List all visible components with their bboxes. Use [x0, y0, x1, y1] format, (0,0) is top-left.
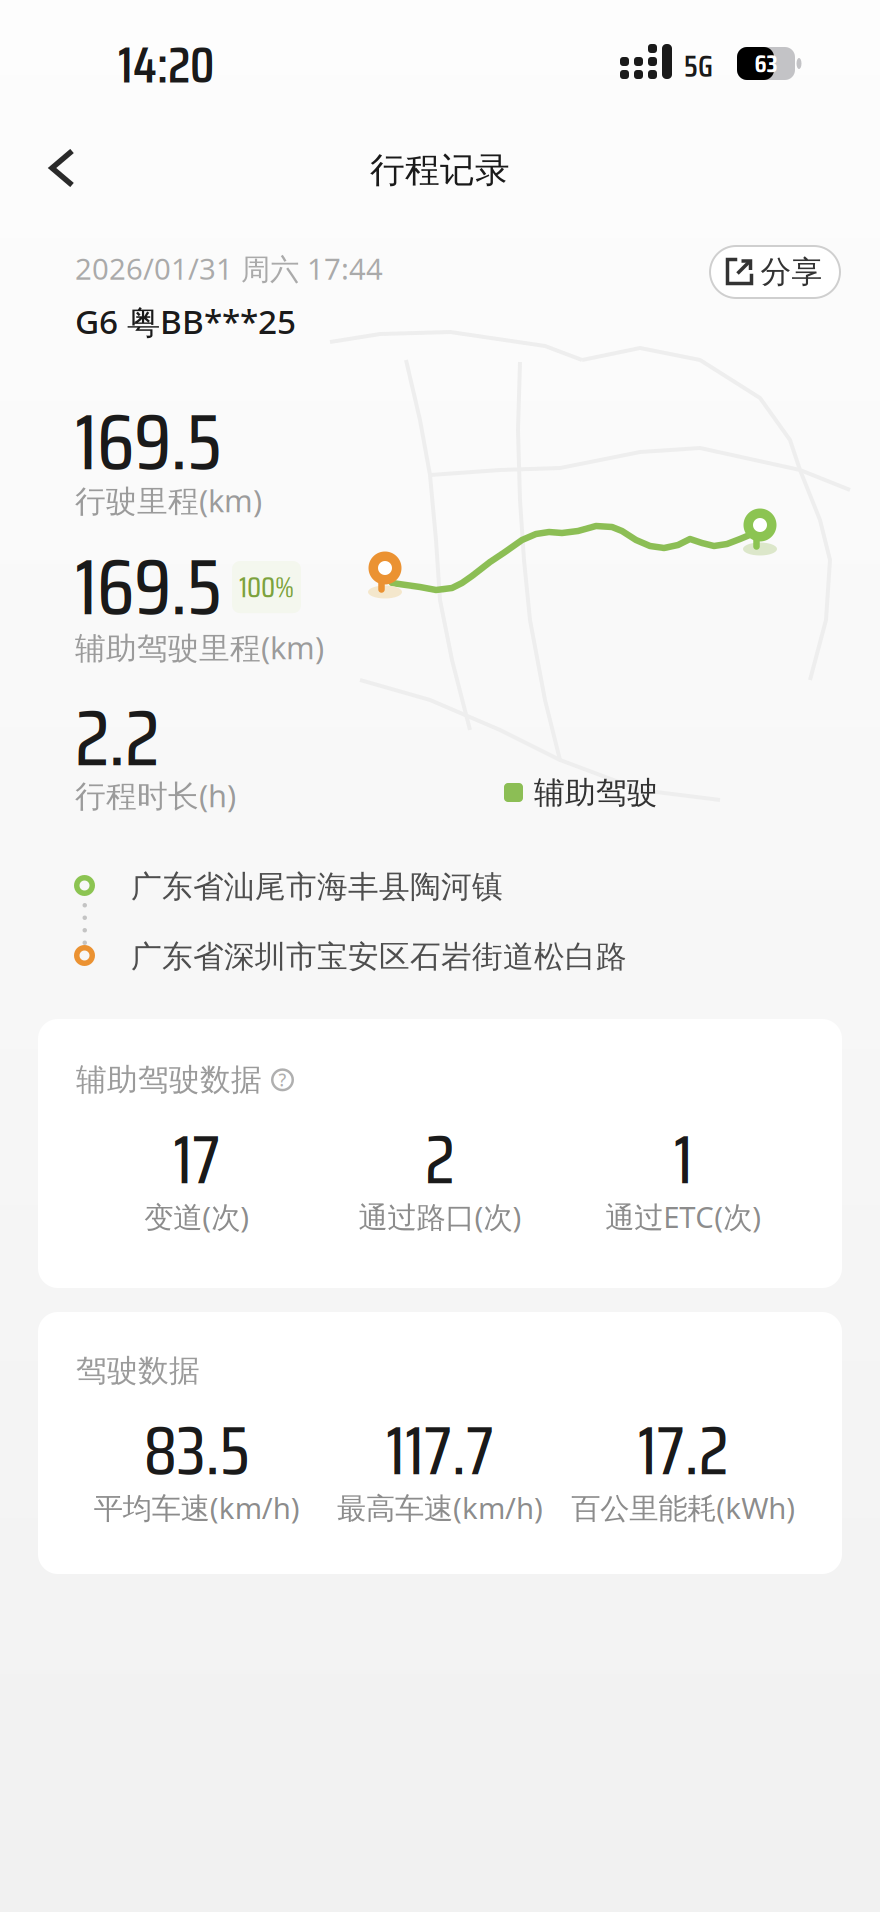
staticText: 2	[425, 1106, 455, 1213]
button[interactable]: 分享	[709, 245, 841, 299]
staticText: 最高车速(km/h)	[337, 1488, 543, 1527]
staticText: 辅助驾驶数据	[76, 1061, 262, 1099]
staticText: 行程时长(h)	[75, 775, 236, 816]
staticText: 分享	[760, 253, 822, 291]
staticText: G6 粤BB***25	[75, 299, 296, 343]
staticText: 2.2	[75, 676, 159, 800]
staticText: 14:20	[118, 25, 214, 105]
staticText: 17	[173, 1106, 220, 1213]
staticText: 平均车速(km/h)	[94, 1488, 300, 1527]
staticText: 行驶里程(km)	[75, 480, 262, 521]
staticText: 驾驶数据	[76, 1352, 200, 1390]
staticText: 通过路口(次)	[358, 1197, 521, 1236]
staticText: 117.7	[386, 1397, 494, 1504]
staticText: 变道(次)	[144, 1197, 249, 1236]
staticText: 百公里能耗(kWh)	[571, 1488, 795, 1527]
staticText: 广东省深圳市宝安区石岩街道松白路	[131, 938, 627, 976]
staticText: 2026/01/31 周六 17:44	[75, 249, 383, 288]
staticText: 100%	[239, 564, 294, 610]
button[interactable]: ?	[271, 1068, 294, 1091]
staticText: 通过ETC(次)	[605, 1197, 761, 1236]
staticText: 辅助驾驶里程(km)	[75, 627, 324, 668]
staticText: 169.5	[75, 380, 222, 504]
staticText: 83.5	[144, 1397, 250, 1504]
staticText: 63	[754, 44, 777, 83]
staticText: 5G	[684, 42, 713, 90]
staticText: 169.5	[75, 525, 222, 649]
staticText: 广东省汕尾市海丰县陶河镇	[131, 868, 503, 906]
staticText: ?	[278, 1068, 286, 1091]
button[interactable]	[38, 137, 87, 200]
staticText: 辅助驾驶	[534, 774, 658, 812]
staticText: 1	[674, 1106, 693, 1213]
staticText: 行程记录	[370, 149, 510, 192]
staticText: 17.2	[638, 1397, 729, 1504]
